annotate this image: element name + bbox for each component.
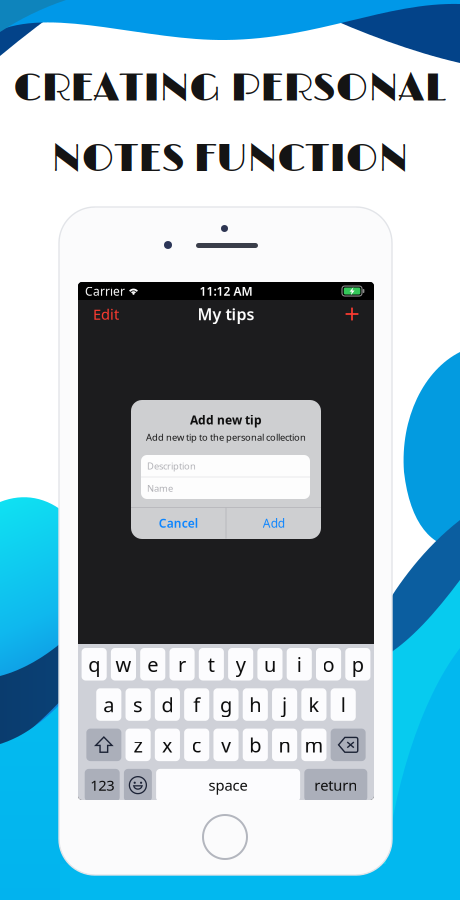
staticText: m bbox=[304, 732, 323, 758]
staticText: v bbox=[221, 732, 231, 758]
button[interactable]: n bbox=[272, 729, 297, 761]
button[interactable]: Add tip bbox=[336, 303, 368, 325]
staticText: r bbox=[178, 651, 186, 678]
button[interactable]: return bbox=[304, 769, 367, 801]
staticText: j bbox=[282, 691, 287, 718]
button[interactable]: u bbox=[257, 648, 282, 680]
staticText: s bbox=[133, 691, 143, 718]
staticText: h bbox=[249, 691, 261, 718]
button[interactable]: m bbox=[301, 729, 326, 761]
staticText: q bbox=[88, 651, 100, 678]
staticText: u bbox=[264, 651, 276, 678]
staticText: y bbox=[236, 651, 246, 678]
staticText: 11:12 AM bbox=[199, 283, 252, 299]
button[interactable]: j bbox=[272, 688, 297, 721]
button[interactable]: r bbox=[169, 648, 195, 680]
button[interactable]: q bbox=[82, 648, 107, 680]
button[interactable]: l bbox=[331, 688, 356, 721]
button[interactable]: Emoji bbox=[124, 769, 152, 801]
staticText: o bbox=[323, 651, 335, 678]
staticText: g bbox=[220, 691, 232, 718]
staticText: Name bbox=[147, 482, 173, 494]
staticText: l bbox=[341, 691, 346, 718]
staticText: p bbox=[352, 651, 364, 678]
staticText: z bbox=[134, 732, 143, 758]
staticText: Add new tip bbox=[190, 412, 262, 428]
staticText: i bbox=[297, 651, 302, 678]
button[interactable]: k bbox=[301, 688, 326, 721]
button[interactable]: Delete bbox=[331, 729, 366, 761]
staticText: Add bbox=[263, 515, 285, 531]
button[interactable]: a bbox=[96, 688, 121, 721]
staticText: Carrier bbox=[85, 283, 125, 299]
button[interactable]: y bbox=[228, 648, 253, 680]
button[interactable]: b bbox=[243, 729, 268, 761]
button[interactable]: 123 bbox=[85, 769, 120, 801]
staticText: My tips bbox=[197, 303, 254, 325]
button[interactable]: Shift bbox=[86, 729, 121, 761]
staticText: a bbox=[103, 691, 114, 718]
button[interactable]: Cancel bbox=[131, 508, 226, 539]
staticText: Edit bbox=[93, 304, 119, 324]
button[interactable]: v bbox=[213, 729, 238, 761]
staticText: w bbox=[115, 651, 131, 678]
button[interactable]: i bbox=[287, 648, 312, 680]
staticText: return bbox=[314, 775, 357, 795]
button[interactable]: t bbox=[199, 648, 224, 680]
staticText: k bbox=[308, 691, 319, 718]
staticText: f bbox=[193, 691, 200, 718]
button[interactable]: p bbox=[345, 648, 370, 680]
button[interactable]: g bbox=[213, 688, 238, 721]
staticText: c bbox=[192, 732, 202, 758]
staticText: x bbox=[162, 732, 173, 758]
staticText: b bbox=[249, 732, 261, 758]
button[interactable]: x bbox=[155, 729, 180, 761]
staticText: CREATING PERSONAL bbox=[13, 64, 446, 113]
button[interactable]: h bbox=[243, 688, 268, 721]
button[interactable]: f bbox=[184, 688, 209, 721]
button[interactable]: w bbox=[111, 648, 136, 680]
button[interactable]: Add bbox=[226, 508, 321, 539]
staticText: 123 bbox=[90, 775, 114, 795]
button[interactable]: e bbox=[140, 648, 165, 680]
button[interactable]: z bbox=[125, 729, 151, 761]
staticText: Description bbox=[147, 460, 196, 472]
staticText: NOTES FUNCTION bbox=[51, 135, 408, 183]
staticText: n bbox=[279, 732, 291, 758]
staticText: e bbox=[147, 651, 158, 678]
button[interactable]: space bbox=[156, 769, 300, 801]
button[interactable]: d bbox=[155, 688, 180, 721]
button[interactable]: c bbox=[184, 729, 209, 761]
staticText: Add new tip to the personal collection bbox=[146, 431, 306, 443]
button[interactable]: Edit bbox=[84, 299, 128, 329]
staticText: d bbox=[161, 691, 173, 718]
button[interactable]: s bbox=[125, 688, 151, 721]
staticText: Cancel bbox=[159, 515, 198, 531]
button[interactable]: o bbox=[316, 648, 341, 680]
staticText: t bbox=[208, 651, 215, 678]
staticText: space bbox=[209, 775, 248, 795]
